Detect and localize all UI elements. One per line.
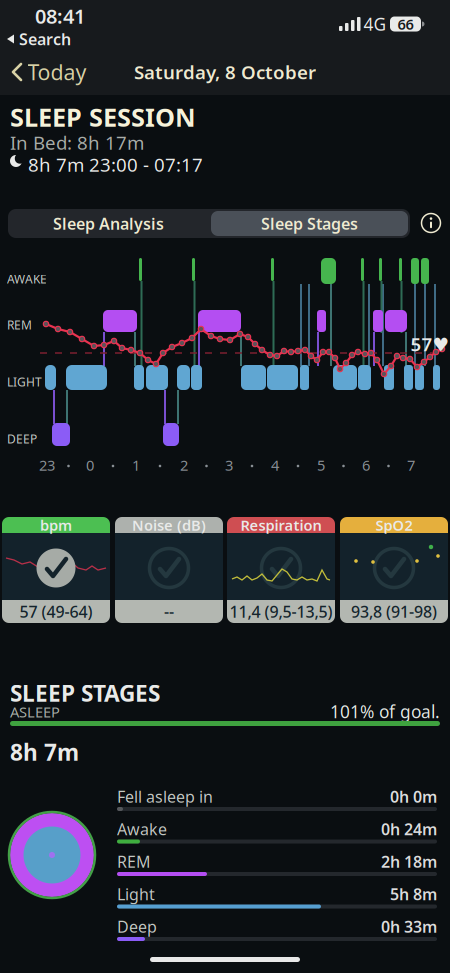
staticText: Light <box>117 883 155 905</box>
staticText: Respiration <box>240 515 321 535</box>
staticText: Sleep Analysis <box>53 213 164 234</box>
button[interactable]: bpm <box>2 517 110 623</box>
staticText: 0 <box>86 455 94 475</box>
staticText: SLEEP STAGES <box>10 678 160 708</box>
staticText: ASLEEP <box>10 702 60 721</box>
staticText: 8h 7m 23:00 - 07:17 <box>28 152 203 177</box>
staticText: 2 <box>180 455 188 475</box>
staticText: 08:41 <box>35 3 85 29</box>
staticText: 57♥ <box>410 332 449 356</box>
staticText: 23 <box>39 455 55 475</box>
staticText: 11,4 (9,5-13,5) <box>229 601 332 622</box>
staticText: Deep <box>117 916 157 937</box>
staticText: 7 <box>407 455 415 475</box>
staticText: bpm <box>40 515 72 535</box>
staticText: 5h 8m <box>390 883 437 905</box>
staticText: In Bed: 8h 17m <box>10 130 144 155</box>
button[interactable] <box>419 211 443 235</box>
staticText: 0h 0m <box>390 786 437 807</box>
staticText: DEEP <box>7 431 37 447</box>
staticText: LIGHT <box>7 374 42 390</box>
staticText: 4G <box>363 12 386 35</box>
staticText: 5 <box>317 455 325 475</box>
staticText: 101% of goal. <box>330 700 440 723</box>
staticText: 4 <box>271 455 279 475</box>
staticText: 93,8 (91-98) <box>351 601 437 622</box>
staticText: Search <box>19 28 71 50</box>
staticText: 57 (49-64) <box>19 601 92 622</box>
staticText: 66 <box>397 14 413 34</box>
button[interactable]: Sleep Analysis <box>9 209 208 238</box>
button[interactable]: SpO2 <box>340 517 448 623</box>
staticText: SpO2 <box>375 515 412 535</box>
staticText: 1 <box>132 455 140 475</box>
staticText: Noise (dB) <box>132 515 206 535</box>
staticText: Fell asleep in <box>117 786 213 807</box>
staticText: 0h 24m <box>381 818 437 840</box>
staticText: 0h 33m <box>381 916 437 937</box>
staticText: Today <box>27 58 86 86</box>
staticText: Sleep Stages <box>261 213 358 234</box>
staticText: -- <box>164 601 174 622</box>
staticText: 2h 18m <box>381 851 437 872</box>
staticText: 8h 7m <box>10 737 79 767</box>
staticText: Awake <box>117 818 167 840</box>
staticText: Saturday, 8 October <box>134 60 316 84</box>
staticText: REM <box>7 317 32 333</box>
staticText: SLEEP SESSION <box>10 100 196 134</box>
staticText: AWAKE <box>7 271 47 287</box>
staticText: REM <box>117 851 151 872</box>
button[interactable]: Search <box>6 30 76 48</box>
button[interactable]: Respiration <box>227 517 335 623</box>
button[interactable]: Today <box>0 55 90 89</box>
staticText: 3 <box>225 455 233 475</box>
staticText: 6 <box>362 455 370 475</box>
button[interactable]: Sleep Stages <box>211 211 408 236</box>
button[interactable]: Noise (dB) <box>115 517 223 623</box>
